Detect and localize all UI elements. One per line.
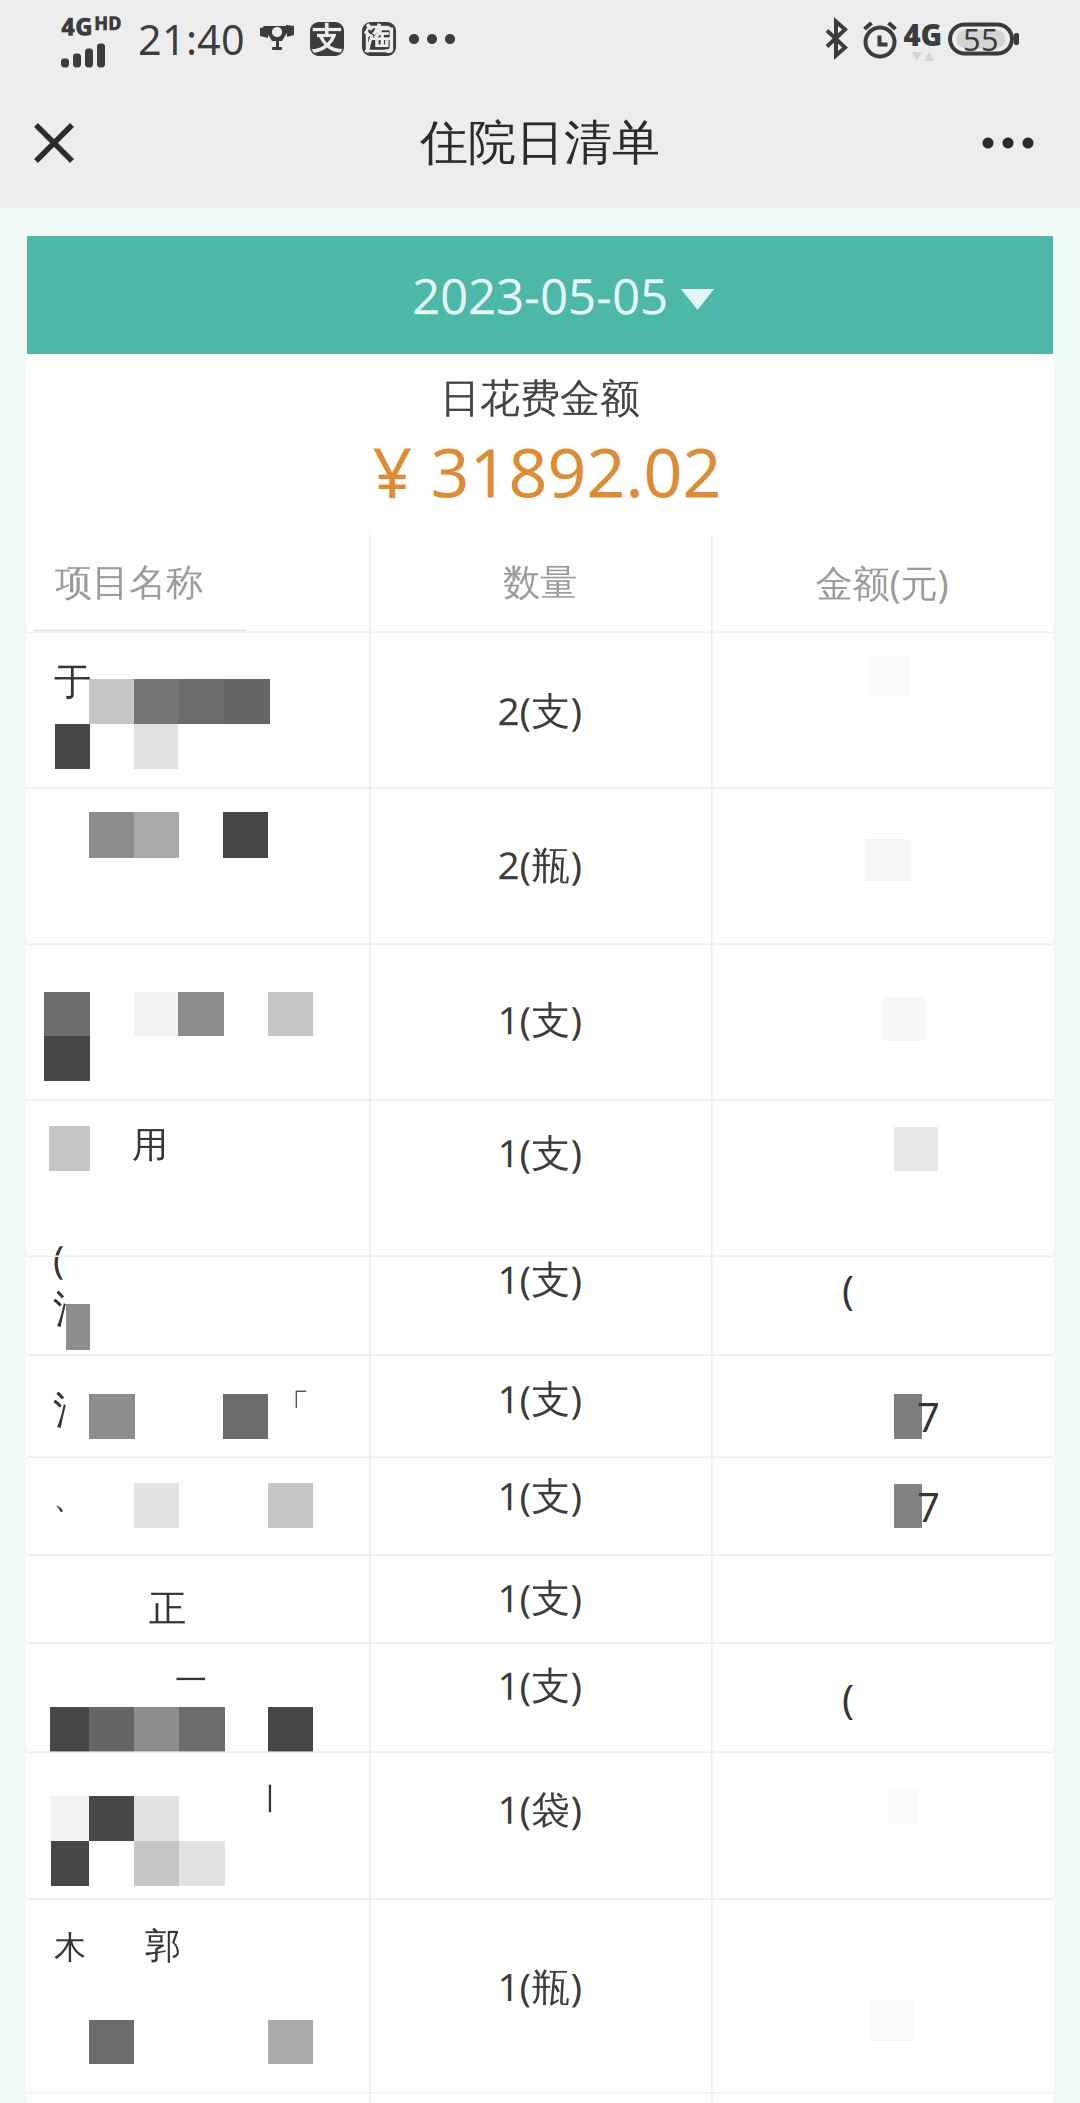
- staticText: 支: [311, 20, 342, 58]
- staticText: (: [842, 1263, 854, 1316]
- staticText: 2(支): [497, 684, 582, 736]
- button[interactable]: 1(支): [27, 1356, 1053, 1458]
- staticText: 7: [917, 1390, 940, 1443]
- staticText: 1(支): [497, 1126, 582, 1178]
- staticText: 金额(元): [815, 558, 948, 607]
- staticText: 正: [149, 1586, 186, 1632]
- button[interactable]: 1(支): [27, 1101, 1053, 1257]
- staticText: (: [53, 1234, 64, 1284]
- staticText: 郭: [145, 1924, 181, 1968]
- staticText: 21:40: [138, 12, 245, 66]
- staticText: 1(支): [497, 1253, 582, 1304]
- staticText: 淘: [363, 20, 394, 58]
- button[interactable]: 2023-05-05: [27, 236, 1053, 354]
- staticText: 木: [54, 1928, 86, 1967]
- button[interactable]: 1(支): [27, 1644, 1053, 1753]
- staticText: 1(袋): [497, 1783, 582, 1834]
- staticText: 用: [132, 1123, 168, 1167]
- button[interactable]: 1(瓶): [27, 1900, 1053, 2094]
- staticText: HD: [94, 11, 122, 35]
- staticText: 31892.02: [430, 426, 721, 516]
- staticText: 氵: [53, 1287, 90, 1333]
- staticText: 数量: [503, 560, 577, 606]
- staticText: 2023-05-05: [412, 262, 668, 328]
- staticText: 项目名称: [55, 560, 203, 606]
- staticText: 、: [53, 1478, 85, 1517]
- button[interactable]: 1(支): [27, 1458, 1053, 1556]
- staticText: 1(支): [497, 993, 582, 1045]
- staticText: ¥: [372, 425, 412, 517]
- staticText: 住院日清单: [420, 113, 660, 172]
- button[interactable]: 更多: [954, 89, 1062, 197]
- button[interactable]: 1(袋): [27, 1753, 1053, 1900]
- button[interactable]: 2(支): [27, 633, 1053, 789]
- staticText: 1(支): [497, 1659, 582, 1710]
- staticText: 1(支): [497, 1571, 582, 1623]
- button[interactable]: 1(支): [27, 1257, 1053, 1356]
- button[interactable]: 2(瓶): [27, 789, 1053, 945]
- staticText: (: [842, 1672, 854, 1725]
- button[interactable]: 1(支): [27, 1556, 1053, 1644]
- staticText: 7: [917, 1480, 940, 1533]
- staticText: 55: [963, 19, 999, 59]
- staticText: 4: [903, 15, 920, 54]
- staticText: 1(瓶): [497, 1960, 582, 2012]
- button[interactable]: 关闭: [0, 89, 108, 197]
- staticText: 1(支): [497, 1469, 582, 1521]
- staticText: 1(支): [497, 1372, 582, 1424]
- staticText: 一: [175, 1661, 207, 1700]
- staticText: 2(瓶): [497, 838, 582, 890]
- staticText: 丨: [256, 1781, 285, 1817]
- staticText: 于: [54, 659, 91, 705]
- staticText: 氵: [53, 1388, 90, 1434]
- staticText: 「: [275, 1386, 310, 1429]
- staticText: 日花费金额: [440, 374, 640, 423]
- staticText: 4G: [61, 11, 93, 42]
- staticText: G: [920, 15, 942, 54]
- button[interactable]: 1(支): [27, 945, 1053, 1101]
